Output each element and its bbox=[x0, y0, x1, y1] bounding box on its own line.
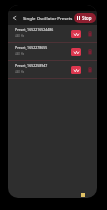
button[interactable]: Play preset bbox=[71, 66, 81, 74]
button[interactable]: Delete preset bbox=[87, 47, 92, 57]
button[interactable]: Back bbox=[8, 11, 21, 25]
staticText: Preset_1652278655 bbox=[15, 45, 48, 50]
button[interactable]: Preset_1652278655 bbox=[8, 43, 97, 61]
button[interactable]: Stop bbox=[74, 13, 96, 23]
button[interactable]: Preset_1652258947 bbox=[8, 61, 97, 79]
button[interactable]: Delete preset bbox=[87, 29, 92, 39]
button[interactable]: Play preset bbox=[71, 48, 81, 56]
staticText: Preset_1652216524486 bbox=[15, 27, 54, 32]
staticText: Preset_1652258947 bbox=[15, 63, 48, 68]
staticText: Stop bbox=[82, 15, 92, 21]
button[interactable]: Preset_1652216524486 bbox=[8, 25, 97, 43]
staticText: 440 Hz bbox=[15, 52, 25, 56]
staticText: Single Oscillator Presets bbox=[23, 15, 73, 21]
button[interactable]: Play preset bbox=[71, 30, 81, 38]
button[interactable]: Delete preset bbox=[87, 65, 92, 75]
staticText: 440 Hz bbox=[15, 70, 25, 74]
staticText: 440 Hz bbox=[15, 34, 25, 38]
